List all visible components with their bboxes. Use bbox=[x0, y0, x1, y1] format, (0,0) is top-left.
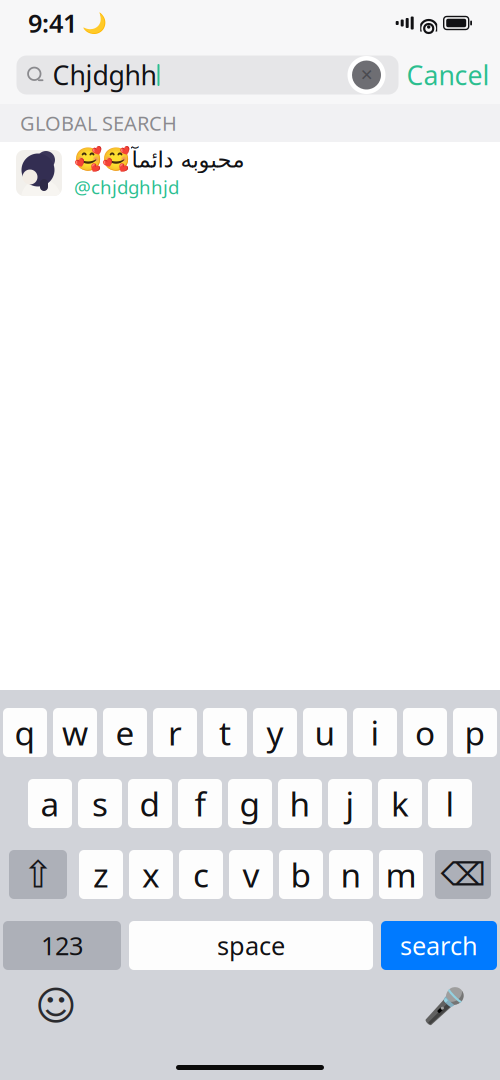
button[interactable]: z bbox=[79, 850, 123, 899]
button[interactable]: n bbox=[329, 850, 373, 899]
button[interactable]: t bbox=[203, 708, 247, 757]
button[interactable]: k bbox=[378, 779, 422, 828]
staticText: x bbox=[142, 852, 160, 897]
button[interactable]: c bbox=[179, 850, 223, 899]
button[interactable]: j bbox=[328, 779, 372, 828]
staticText: g bbox=[239, 781, 260, 826]
staticText: ⌫ bbox=[440, 856, 485, 893]
button[interactable]: m bbox=[379, 850, 423, 899]
staticText: i bbox=[370, 710, 379, 755]
staticText: o bbox=[415, 710, 435, 755]
staticText: GLOBAL SEARCH bbox=[20, 110, 177, 136]
staticText: j bbox=[345, 781, 354, 826]
button[interactable]: f bbox=[178, 779, 222, 828]
button[interactable]: Shift bbox=[9, 850, 67, 899]
staticText: e bbox=[115, 710, 134, 755]
staticText: s bbox=[92, 781, 108, 826]
button[interactable]: Emoji keyboard bbox=[32, 986, 80, 1026]
staticText: ✕ bbox=[360, 66, 373, 84]
staticText: Chjdghh bbox=[52, 57, 156, 93]
button[interactable]: i bbox=[353, 708, 397, 757]
button[interactable]: Delete bbox=[435, 850, 491, 899]
staticText: 🎤 bbox=[422, 986, 465, 1026]
button[interactable]: Dictation bbox=[420, 986, 468, 1026]
button[interactable]: p bbox=[453, 708, 497, 757]
staticText: u bbox=[314, 710, 335, 755]
staticText: b bbox=[290, 852, 311, 897]
button[interactable]: h bbox=[278, 779, 322, 828]
staticText: Cancel bbox=[406, 57, 489, 93]
staticText: search bbox=[400, 929, 478, 962]
button[interactable]: q bbox=[3, 708, 47, 757]
staticText: d bbox=[139, 781, 160, 826]
staticText: a bbox=[40, 781, 59, 826]
staticText: 🌙 bbox=[82, 12, 107, 34]
button[interactable]: o bbox=[403, 708, 447, 757]
staticText: محبوبه دائمآ bbox=[131, 147, 244, 172]
button[interactable]: s bbox=[78, 779, 122, 828]
staticText: n bbox=[340, 852, 361, 897]
button[interactable]: v bbox=[229, 850, 273, 899]
button[interactable]: d bbox=[128, 779, 172, 828]
staticText: 9:41 bbox=[28, 6, 77, 40]
button[interactable]: r bbox=[153, 708, 197, 757]
staticText: y bbox=[266, 710, 283, 755]
staticText: v bbox=[242, 852, 259, 897]
button[interactable]: e bbox=[103, 708, 147, 757]
button[interactable]: search bbox=[381, 921, 497, 970]
staticText: ⇧ bbox=[22, 853, 53, 896]
button[interactable]: space bbox=[129, 921, 373, 970]
staticText: c bbox=[193, 852, 209, 897]
staticText: h bbox=[289, 781, 310, 826]
button[interactable]: x bbox=[129, 850, 173, 899]
button[interactable]: Cancel bbox=[398, 55, 497, 94]
staticText: z bbox=[93, 852, 109, 897]
staticText: 123 bbox=[41, 929, 83, 962]
button[interactable]: Clear text bbox=[346, 55, 386, 95]
button[interactable]: l bbox=[428, 779, 472, 828]
button[interactable]: g bbox=[228, 779, 272, 828]
staticText: @chjdghhjd bbox=[74, 175, 179, 199]
staticText: q bbox=[14, 710, 35, 755]
staticText: r bbox=[168, 710, 182, 755]
staticText: t bbox=[219, 710, 231, 755]
button[interactable]: w bbox=[53, 708, 97, 757]
staticText: m bbox=[385, 852, 416, 897]
button[interactable]: a bbox=[28, 779, 72, 828]
staticText: ☺ bbox=[35, 983, 77, 1029]
staticText: l bbox=[445, 781, 454, 826]
staticText: w bbox=[62, 710, 88, 755]
staticText: f bbox=[194, 781, 205, 826]
button[interactable]: 123 bbox=[3, 921, 121, 970]
staticText: p bbox=[464, 710, 485, 755]
button[interactable]: 🥰🥰 bbox=[0, 142, 500, 204]
staticText: 🥰🥰 bbox=[74, 147, 130, 173]
staticText: space bbox=[217, 929, 285, 962]
button[interactable]: y bbox=[253, 708, 297, 757]
button[interactable]: b bbox=[279, 850, 323, 899]
staticText: k bbox=[391, 781, 409, 826]
button[interactable]: u bbox=[303, 708, 347, 757]
